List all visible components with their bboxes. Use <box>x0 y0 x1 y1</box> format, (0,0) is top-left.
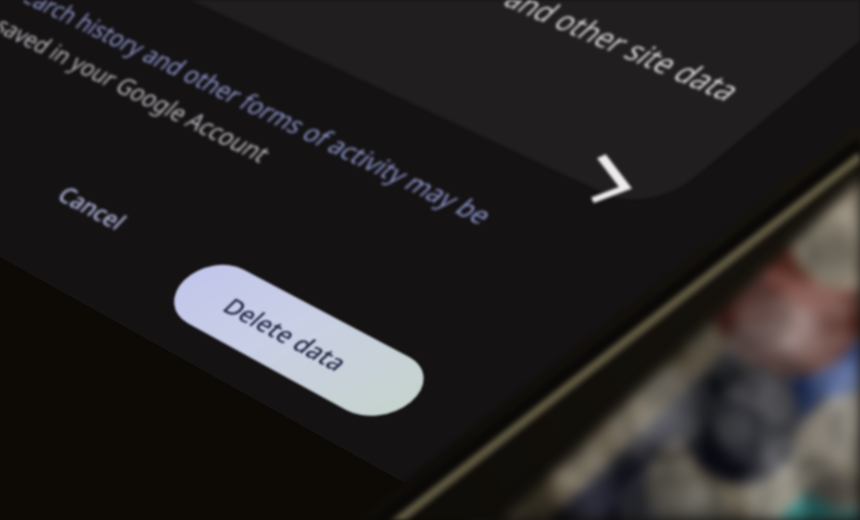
button[interactable]: Delete browsing data dialog <box>0 0 860 520</box>
button[interactable] <box>0 0 860 520</box>
button[interactable] <box>0 0 860 520</box>
